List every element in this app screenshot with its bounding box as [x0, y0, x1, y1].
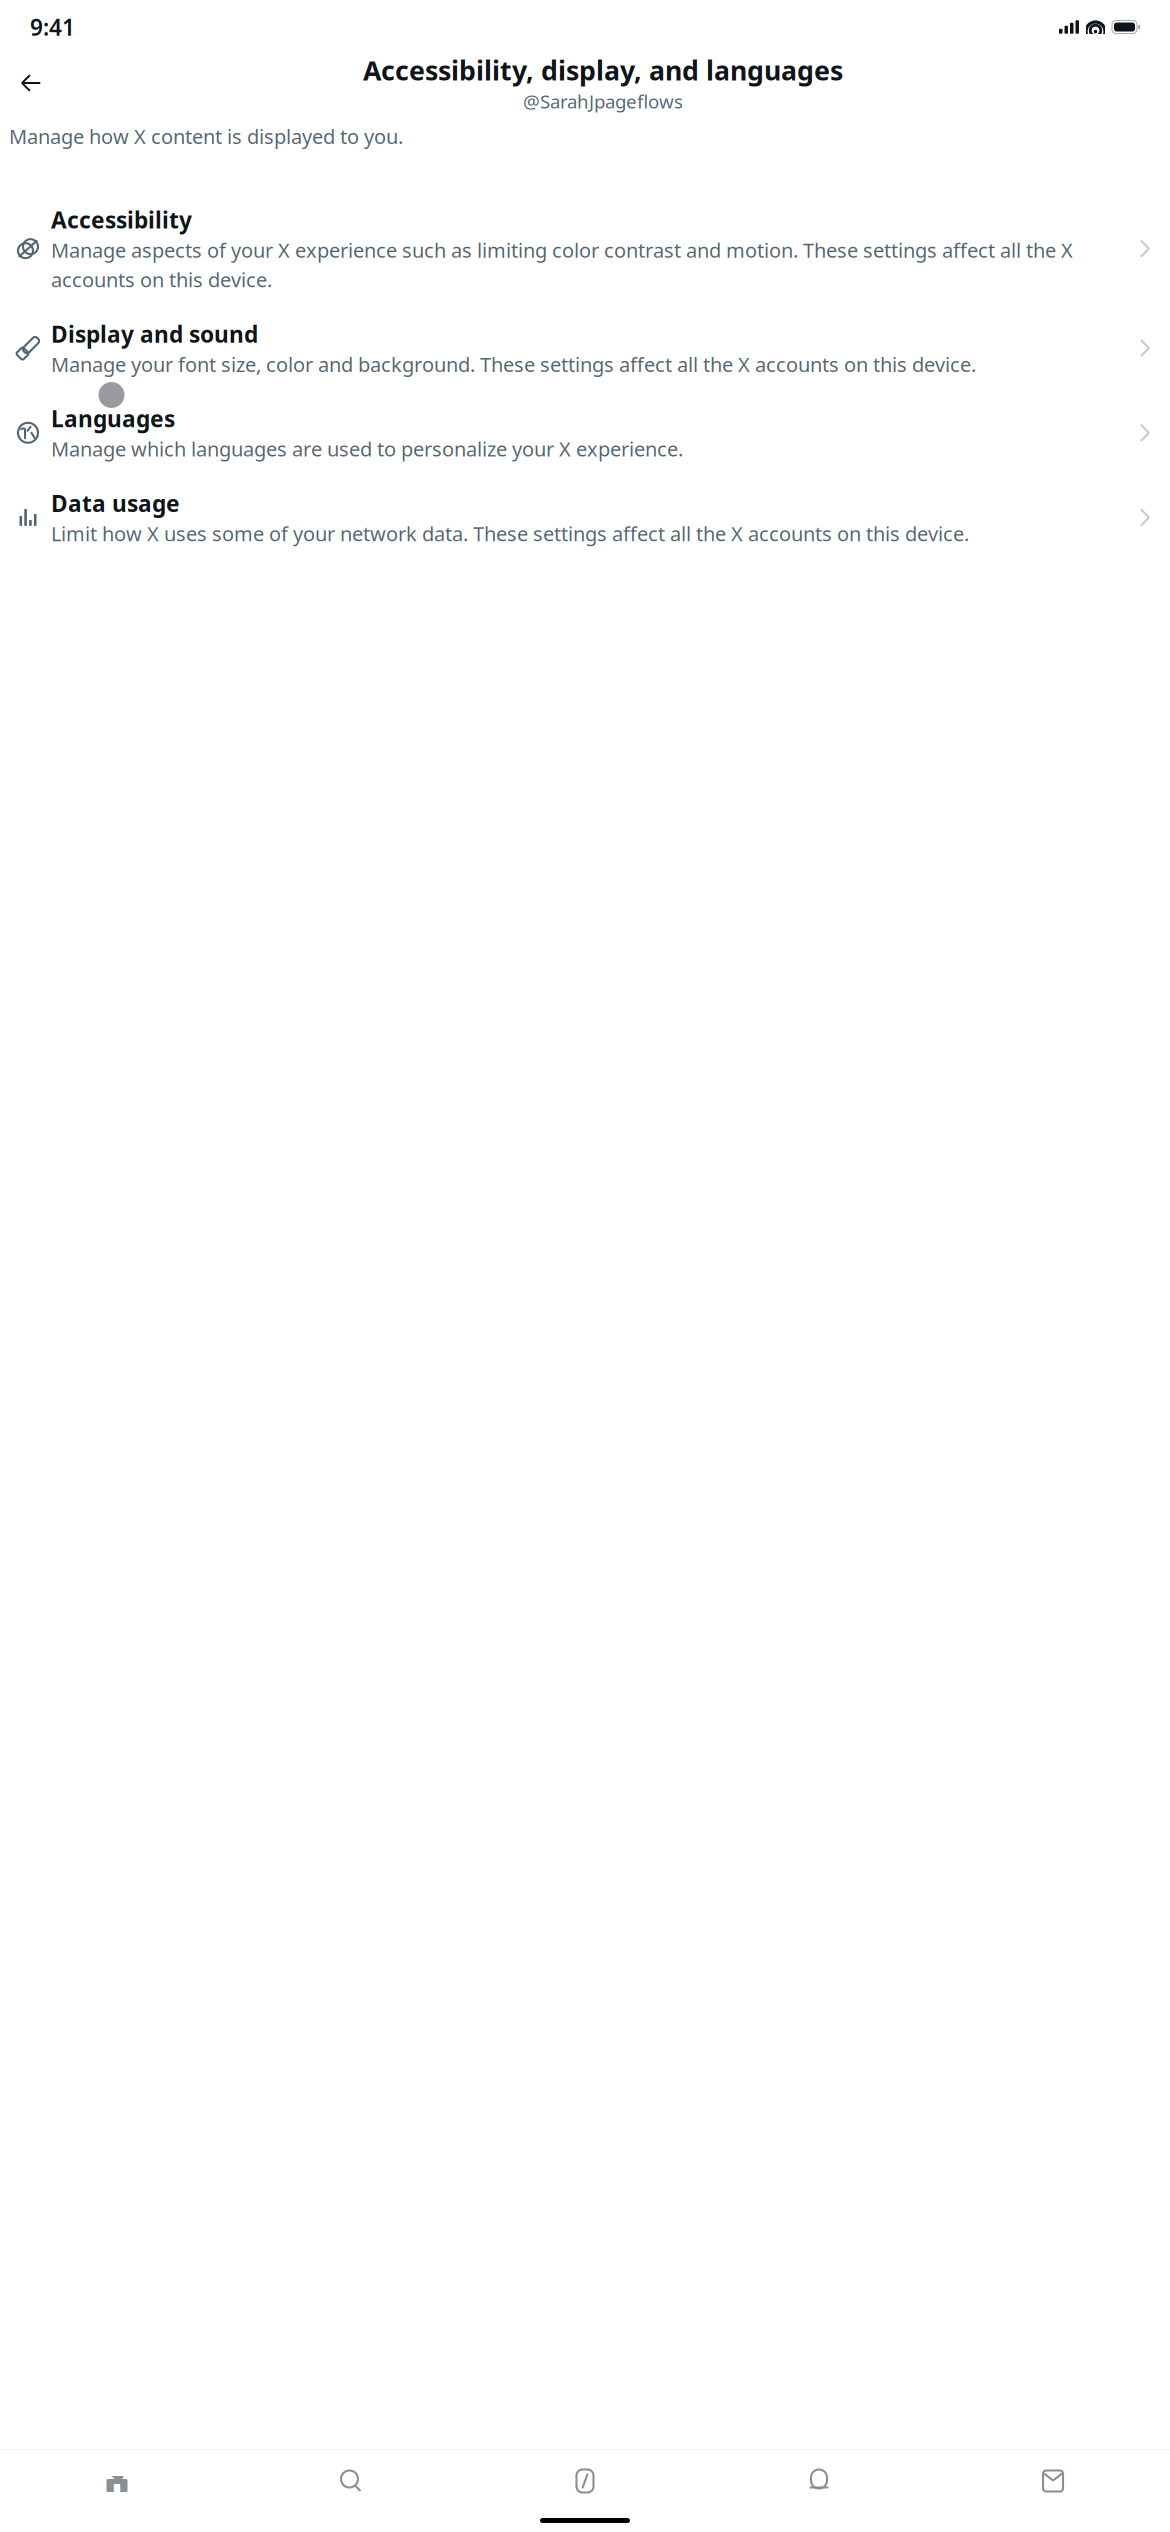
staticText: Accessibility, display, and languages	[363, 52, 843, 88]
staticText: 9:41	[30, 12, 75, 42]
staticText: Accessibility	[51, 205, 192, 235]
staticText: @SarahJpageflows	[523, 89, 683, 114]
button[interactable]: Back	[8, 60, 54, 106]
button[interactable]: Grok	[468, 2456, 702, 2506]
button[interactable]: Accessibility	[3, 192, 1167, 306]
button[interactable]: Notifications	[702, 2456, 936, 2506]
button[interactable]: Languages	[3, 390, 1167, 475]
staticText: Manage aspects of your X experience such…	[51, 237, 1073, 293]
staticText: Manage which languages are used to perso…	[51, 435, 683, 462]
button[interactable]: Messages	[936, 2456, 1170, 2506]
button[interactable]: Home	[0, 2456, 234, 2506]
button[interactable]: Search	[234, 2456, 468, 2506]
staticText: Data usage	[51, 488, 180, 518]
staticText: Limit how X uses some of your network da…	[51, 520, 969, 547]
staticText: Languages	[51, 403, 175, 433]
staticText: Display and sound	[51, 319, 258, 349]
button[interactable]: Data usage	[3, 475, 1167, 560]
staticText: Manage how X content is displayed to you…	[9, 123, 403, 150]
button[interactable]: Display and sound	[3, 306, 1167, 390]
staticText: Manage your font size, color and backgro…	[51, 351, 976, 377]
